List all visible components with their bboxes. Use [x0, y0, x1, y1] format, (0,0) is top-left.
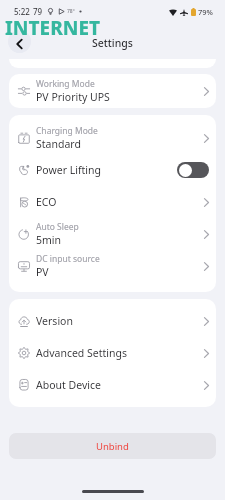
button[interactable]: About Device	[9, 369, 216, 401]
staticText: Working Mode	[36, 78, 95, 90]
staticText: ECO	[36, 195, 204, 209]
staticText: DC input source	[36, 253, 100, 265]
staticText: INTERNET	[5, 15, 101, 41]
staticText: Version	[36, 314, 204, 328]
staticText: Unbind	[96, 440, 129, 453]
button[interactable]: Advanced Settings	[9, 337, 216, 369]
button[interactable]: ECO	[9, 186, 216, 218]
staticText: Charging Mode	[36, 125, 98, 137]
button[interactable]: Back	[8, 30, 31, 53]
staticText: 5:22	[14, 6, 30, 17]
button[interactable]: Power Lifting	[9, 154, 216, 186]
staticText: Power Lifting	[36, 163, 177, 177]
staticText: About Device	[36, 378, 204, 392]
staticText: PV	[36, 265, 49, 279]
staticText: 79	[33, 6, 43, 17]
staticText: 78°	[67, 8, 75, 15]
staticText: Standard	[36, 137, 81, 151]
button[interactable]: Power Lifting toggle	[177, 162, 209, 178]
button[interactable]: Working Mode	[9, 74, 216, 108]
button[interactable]: DC input source	[9, 250, 216, 282]
staticText: Advanced Settings	[36, 346, 204, 360]
staticText: Settings	[92, 36, 133, 50]
button[interactable]: Charging Mode	[9, 122, 216, 154]
button[interactable]: Auto Sleep	[9, 218, 216, 250]
staticText: PV Priority UPS	[36, 90, 110, 104]
button[interactable]: Unbind	[9, 433, 216, 459]
staticText: Auto Sleep	[36, 221, 79, 233]
staticText: 79%	[198, 7, 213, 17]
button[interactable]: Version	[9, 305, 216, 337]
staticText: 5min	[36, 233, 62, 247]
